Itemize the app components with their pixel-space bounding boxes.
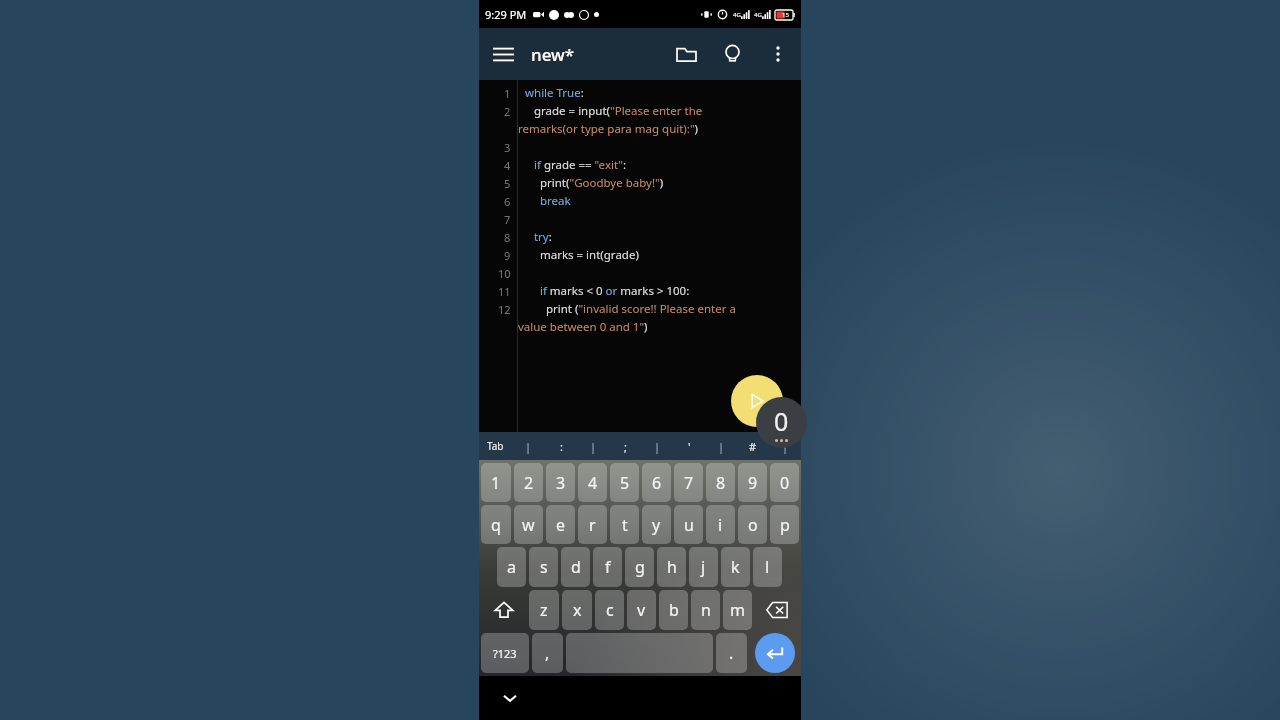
button[interactable]: Shift: [481, 590, 526, 630]
staticText: grade = input("Please enter the: [525, 103, 703, 119]
button[interactable]: 3: [546, 463, 575, 502]
button[interactable]: v: [627, 590, 656, 630]
staticText: g: [635, 556, 645, 578]
staticText: value between 0 and 1"): [518, 319, 648, 335]
button[interactable]: m: [723, 590, 752, 630]
staticText: 8: [504, 230, 511, 245]
button[interactable]: #: [737, 432, 769, 460]
staticText: |: [590, 439, 597, 454]
button[interactable]: 4: [578, 463, 607, 502]
button[interactable]: 8: [706, 463, 735, 502]
button[interactable]: Run: [731, 375, 783, 427]
button[interactable]: c: [595, 590, 624, 630]
button[interactable]: .: [716, 633, 747, 673]
staticText: c: [606, 599, 614, 621]
button[interactable]: 2: [514, 463, 543, 502]
button[interactable]: ': [673, 432, 705, 460]
button[interactable]: d: [561, 547, 590, 587]
staticText: while True:: [525, 85, 584, 101]
staticText: try:: [525, 229, 552, 245]
staticText: e: [556, 514, 566, 536]
button[interactable]: s: [529, 547, 558, 587]
button[interactable]: |: [705, 432, 737, 460]
button[interactable]: 0: [770, 463, 799, 502]
button[interactable]: a: [497, 547, 526, 587]
button[interactable]: Recorder: [756, 397, 807, 448]
staticText: break: [525, 193, 571, 209]
button[interactable]: 6: [642, 463, 671, 502]
button[interactable]: e: [546, 505, 575, 544]
staticText: 4G: [754, 11, 762, 19]
staticText: :: [560, 439, 563, 454]
staticText: 3: [504, 140, 511, 155]
button[interactable]: l: [753, 547, 782, 587]
button[interactable]: |: [769, 432, 801, 460]
staticText: 11: [498, 284, 511, 299]
button[interactable]: |: [641, 432, 673, 460]
staticText: marks = int(grade): [525, 247, 639, 263]
staticText: |: [782, 439, 789, 454]
button[interactable]: 1: [481, 463, 511, 502]
staticText: 9:29 PM: [485, 7, 527, 22]
button[interactable]: b: [659, 590, 688, 630]
staticText: 2: [504, 104, 511, 119]
staticText: l: [765, 556, 770, 578]
button[interactable]: ,: [532, 633, 563, 673]
button[interactable]: o: [738, 505, 767, 544]
staticText: 4G: [733, 11, 741, 19]
button[interactable]: r: [578, 505, 607, 544]
staticText: 6: [504, 194, 511, 209]
button[interactable]: [566, 633, 713, 673]
staticText: if marks < 0 or marks > 100:: [525, 283, 690, 299]
button[interactable]: Menu: [479, 30, 527, 78]
button[interactable]: Open folder: [663, 31, 709, 77]
staticText: 10: [498, 266, 511, 281]
button[interactable]: j: [689, 547, 718, 587]
button[interactable]: More options: [755, 31, 801, 77]
button[interactable]: ?123: [481, 633, 529, 673]
staticText: 4: [588, 472, 598, 494]
button[interactable]: z: [529, 590, 559, 630]
button[interactable]: f: [593, 547, 622, 587]
button[interactable]: y: [642, 505, 671, 544]
button[interactable]: i: [706, 505, 735, 544]
button[interactable]: ;: [609, 432, 641, 460]
staticText: 5: [504, 176, 511, 191]
button[interactable]: w: [514, 505, 543, 544]
staticText: x: [573, 599, 582, 621]
staticText: |: [654, 439, 661, 454]
staticText: 12: [498, 302, 511, 317]
staticText: h: [667, 556, 677, 578]
staticText: v: [637, 599, 646, 621]
button[interactable]: h: [657, 547, 686, 587]
staticText: if grade == "exit":: [525, 157, 627, 173]
button[interactable]: u: [674, 505, 703, 544]
staticText: new*: [531, 43, 575, 66]
button[interactable]: |: [512, 432, 545, 460]
staticText: 0: [780, 472, 790, 494]
button[interactable]: p: [770, 505, 799, 544]
button[interactable]: |: [577, 432, 609, 460]
button[interactable]: k: [721, 547, 750, 587]
button[interactable]: 9: [738, 463, 767, 502]
button[interactable]: Hint: [709, 31, 755, 77]
staticText: remarks(or type para mag quit):"): [518, 121, 699, 137]
staticText: ,: [545, 642, 550, 664]
button[interactable]: Enter: [755, 633, 795, 673]
button[interactable]: q: [481, 505, 511, 544]
staticText: |: [525, 439, 532, 454]
button[interactable]: Hide keyboard: [493, 681, 527, 715]
button[interactable]: 7: [674, 463, 703, 502]
button[interactable]: x: [562, 590, 592, 630]
button[interactable]: n: [691, 590, 720, 630]
button[interactable]: Backspace: [755, 590, 799, 630]
button[interactable]: g: [625, 547, 654, 587]
button[interactable]: t: [610, 505, 639, 544]
button[interactable]: 5: [610, 463, 639, 502]
button[interactable]: :: [545, 432, 577, 460]
staticText: ;: [624, 439, 627, 454]
staticText: 7: [504, 212, 511, 227]
button[interactable]: Tab: [479, 432, 512, 460]
staticText: 9: [504, 248, 511, 263]
staticText: n: [701, 599, 711, 621]
